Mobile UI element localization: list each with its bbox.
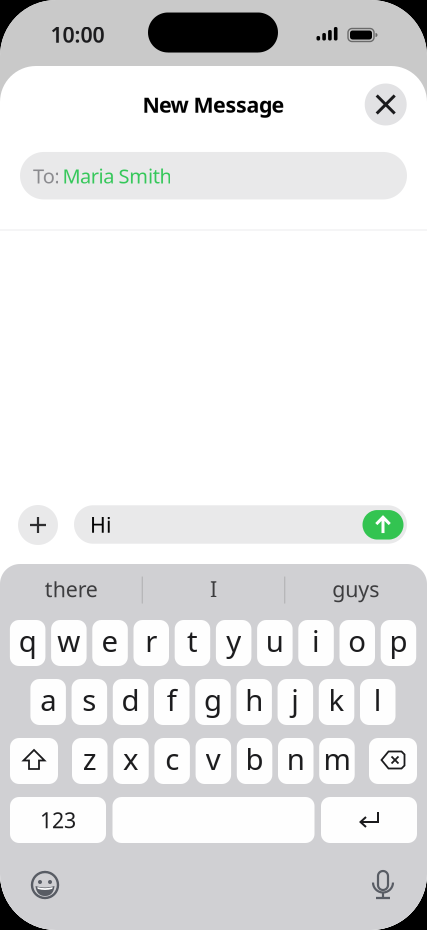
button[interactable]: Dictation	[367, 869, 398, 900]
button[interactable]: there	[3, 573, 139, 605]
staticText: p	[389, 621, 407, 660]
staticText: w	[57, 621, 80, 660]
button[interactable]: k	[319, 679, 354, 725]
button[interactable]: l	[360, 679, 395, 725]
staticText: v	[206, 739, 221, 778]
staticText: 123	[40, 806, 76, 834]
staticText: I	[210, 575, 217, 603]
staticText: e	[102, 621, 119, 660]
button[interactable]: b	[237, 738, 272, 784]
staticText: h	[245, 680, 263, 719]
button[interactable]: z	[72, 738, 107, 784]
button[interactable]: m	[319, 738, 355, 784]
button[interactable]: Hi	[74, 505, 407, 544]
staticText: k	[329, 680, 345, 719]
button[interactable]: guys	[288, 573, 424, 605]
staticText: y	[226, 621, 241, 660]
button[interactable]: Close	[365, 83, 407, 125]
staticText: j	[291, 680, 299, 719]
staticText: s	[82, 680, 96, 719]
button[interactable]: c	[154, 738, 190, 784]
staticText: Maria Smith	[62, 162, 171, 189]
staticText: l	[374, 680, 382, 719]
staticText: guys	[332, 575, 379, 603]
button[interactable]: o	[339, 620, 375, 666]
button[interactable]: e	[92, 620, 128, 666]
button[interactable]: i	[298, 620, 334, 666]
button[interactable]: j	[278, 679, 313, 725]
button[interactable]: 123	[10, 797, 106, 843]
button[interactable]: g	[195, 679, 231, 725]
button[interactable]: a	[30, 679, 66, 725]
button[interactable]: Add attachment	[18, 505, 58, 545]
staticText: there	[45, 575, 98, 603]
staticText: Hi	[90, 510, 112, 539]
staticText: t	[187, 621, 198, 660]
button[interactable]: To:	[20, 152, 407, 199]
button[interactable]: x	[113, 738, 149, 784]
staticText: f	[167, 680, 177, 719]
button[interactable]: q	[10, 620, 45, 666]
button[interactable]: w	[51, 620, 87, 666]
staticText: New Message	[142, 90, 284, 119]
button[interactable]: Emoji	[31, 871, 59, 899]
button[interactable]: Send	[362, 510, 403, 539]
button[interactable]: u	[257, 620, 293, 666]
staticText: q	[19, 621, 37, 660]
staticText: z	[83, 739, 97, 778]
staticText: m	[323, 739, 350, 778]
button[interactable]: p	[381, 620, 416, 666]
button[interactable]: space	[112, 797, 314, 843]
staticText: x	[123, 739, 139, 778]
staticText: n	[287, 739, 305, 778]
button[interactable]: v	[196, 738, 231, 784]
button[interactable]: Shift	[10, 738, 58, 784]
button[interactable]: d	[113, 679, 148, 725]
staticText: a	[40, 680, 56, 719]
button[interactable]: r	[133, 620, 169, 666]
button[interactable]: Return	[321, 797, 417, 843]
staticText: 10:00	[50, 20, 104, 49]
button[interactable]: I	[145, 573, 281, 605]
button[interactable]: n	[278, 738, 313, 784]
staticText: r	[145, 621, 157, 660]
button[interactable]: h	[236, 679, 272, 725]
staticText: To:	[33, 162, 59, 189]
staticText: i	[312, 621, 320, 660]
button[interactable]: y	[216, 620, 251, 666]
button[interactable]: f	[154, 679, 189, 725]
staticText: o	[348, 621, 366, 660]
staticText: c	[165, 739, 179, 778]
button[interactable]: s	[72, 679, 107, 725]
staticText: d	[122, 680, 140, 719]
staticText: g	[204, 680, 222, 719]
button[interactable]: Delete	[369, 738, 417, 784]
button[interactable]: t	[175, 620, 210, 666]
staticText: u	[266, 621, 284, 660]
staticText: b	[246, 739, 264, 778]
